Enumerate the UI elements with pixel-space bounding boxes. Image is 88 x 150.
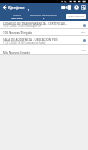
staticText: 2 xyxy=(43,17,45,20)
button[interactable]: Back xyxy=(2,5,7,10)
staticText: 105 Nuevas/Dirigida xyxy=(3,31,33,35)
button[interactable]: Usuario xyxy=(11,14,23,20)
staticText: NUEVO SERVICIO xyxy=(68,15,85,18)
button[interactable]: More options xyxy=(81,5,86,10)
staticText: 10-01-2024 13:45 Descarga PDF xyxy=(3,24,42,28)
staticText: CONSEJO DE TRANSPARENCIA - CERTIFICADO D… xyxy=(3,22,69,26)
button[interactable]: Resolucion Departamento xyxy=(30,14,57,20)
staticText: Kjenjene xyxy=(8,5,25,10)
staticText: Ayer xyxy=(81,49,86,52)
button[interactable]: Video call xyxy=(60,5,65,10)
button[interactable]: CONSEJO DE TRANSPARENCIA - CERTIFICADO D… xyxy=(0,21,88,29)
button[interactable]: NUEVO SERVICIO xyxy=(66,14,86,19)
button[interactable]: Documents xyxy=(67,5,72,10)
staticText: Usuario xyxy=(13,14,22,17)
staticText: Mis Nuevos Estado xyxy=(3,51,31,55)
button[interactable]: SALA DE AUDIENCIA - UBICACION PDS xyxy=(0,36,88,45)
staticText: 1001-0418 xyxy=(11,17,23,20)
button[interactable]: Mis Nuevos Estado xyxy=(0,45,88,55)
staticText: Resolucion Departamento xyxy=(30,14,57,17)
button[interactable]: 105 Nuevas/Dirigida xyxy=(0,29,88,36)
staticText: Hoy xyxy=(81,31,86,34)
staticText: SALA DE AUDIENCIA - UBICACION PDS xyxy=(3,38,58,42)
button[interactable]: Help xyxy=(74,5,79,10)
staticText: 11-01-2024 13:30 Comparece Sala2 xyxy=(3,41,46,45)
